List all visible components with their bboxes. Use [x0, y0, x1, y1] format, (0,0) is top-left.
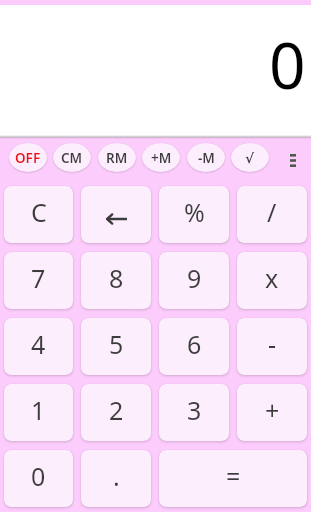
staticText: RM: [106, 149, 128, 167]
button[interactable]: /: [237, 186, 307, 243]
button[interactable]: 3: [159, 384, 229, 441]
staticText: 0: [269, 21, 306, 108]
button[interactable]: 0: [4, 450, 73, 507]
staticText: 8: [109, 261, 124, 295]
staticText: CM: [61, 149, 83, 167]
button[interactable]: 9: [159, 252, 229, 309]
button[interactable]: OFF: [9, 143, 47, 172]
staticText: 4: [31, 327, 46, 361]
button[interactable]: RM: [98, 143, 136, 172]
button[interactable]: C: [4, 186, 73, 243]
button[interactable]: 2: [81, 384, 151, 441]
button[interactable]: +M: [142, 143, 180, 172]
button[interactable]: √: [231, 143, 269, 172]
staticText: /: [267, 195, 277, 229]
staticText: x: [265, 261, 279, 295]
button[interactable]: .: [81, 450, 151, 507]
button[interactable]: CM: [53, 143, 91, 172]
staticText: 3: [187, 393, 202, 427]
staticText: .: [113, 459, 120, 493]
staticText: =: [226, 459, 241, 493]
button[interactable]: More options: [279, 143, 307, 172]
button[interactable]: Backspace: [81, 186, 151, 243]
button[interactable]: +: [237, 384, 307, 441]
staticText: 2: [109, 393, 124, 427]
staticText: 7: [31, 261, 46, 295]
staticText: %: [184, 195, 205, 229]
staticText: 6: [187, 327, 202, 361]
button[interactable]: 5: [81, 318, 151, 375]
button[interactable]: x: [237, 252, 307, 309]
staticText: 1: [31, 393, 46, 427]
staticText: √: [245, 150, 255, 166]
button[interactable]: -M: [187, 143, 225, 172]
button[interactable]: =: [159, 450, 307, 507]
button[interactable]: 1: [4, 384, 73, 441]
button[interactable]: 7: [4, 252, 73, 309]
button[interactable]: 6: [159, 318, 229, 375]
button[interactable]: %: [159, 186, 229, 243]
staticText: -M: [198, 149, 215, 167]
staticText: 0: [31, 459, 46, 493]
staticText: OFF: [15, 149, 41, 167]
button[interactable]: -: [237, 318, 307, 375]
staticText: C: [31, 195, 47, 229]
staticText: +: [265, 393, 280, 427]
staticText: 5: [109, 327, 124, 361]
staticText: +M: [151, 149, 172, 167]
button[interactable]: 4: [4, 318, 73, 375]
staticText: -: [268, 327, 277, 361]
button[interactable]: 8: [81, 252, 151, 309]
staticText: 9: [187, 261, 202, 295]
